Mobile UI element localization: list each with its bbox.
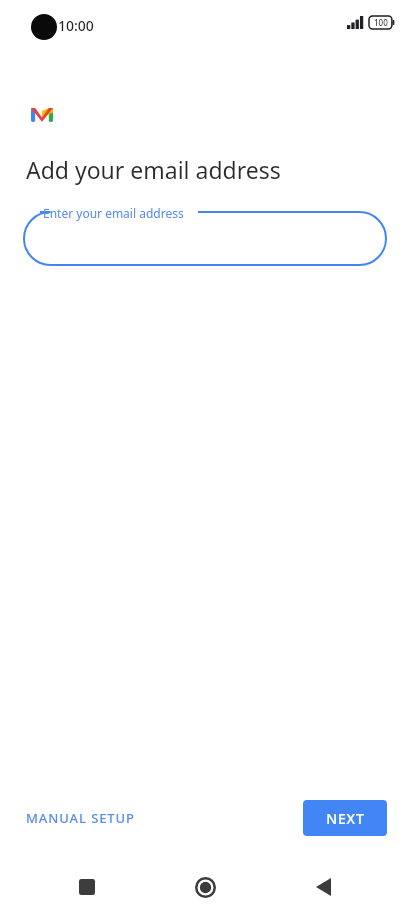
button[interactable]: NEXT: [303, 800, 387, 836]
staticText: Add your email address: [26, 154, 281, 185]
staticText: NEXT: [326, 809, 365, 828]
button[interactable]: Home: [181, 863, 229, 911]
staticText: 100: [374, 17, 388, 28]
staticText: 10:00: [58, 16, 94, 35]
button[interactable]: Recent apps: [63, 863, 111, 911]
staticText: MANUAL SETUP: [26, 809, 135, 827]
button[interactable]: MANUAL SETUP: [14, 801, 147, 835]
staticText: Enter your email address: [43, 205, 184, 221]
button[interactable]: Back: [299, 863, 347, 911]
button[interactable]: Enter your email address: [0, 203, 411, 265]
